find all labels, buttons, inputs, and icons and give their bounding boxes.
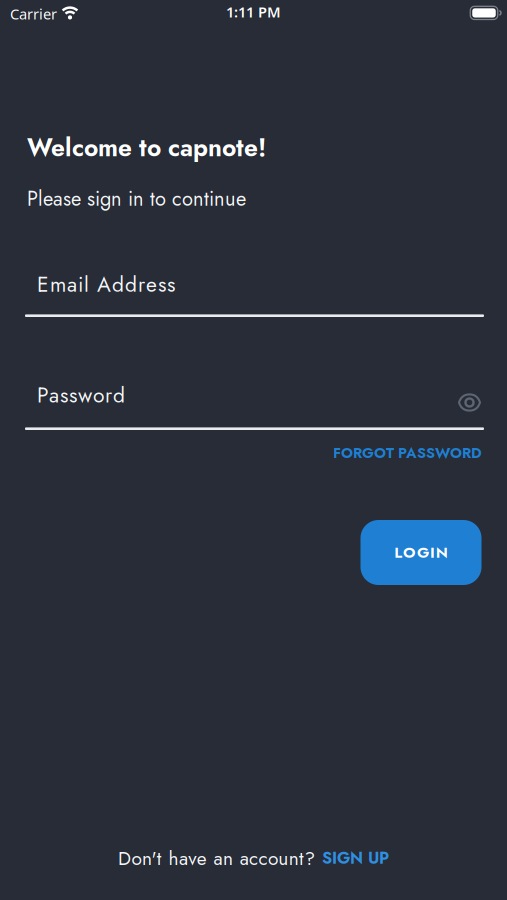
staticText: G <box>417 541 429 564</box>
staticText: L <box>394 541 402 564</box>
staticText: 1:11 PM <box>226 2 281 21</box>
staticText: Email Address <box>37 269 175 300</box>
button[interactable]: Password <box>25 368 484 430</box>
staticText: Password <box>37 380 125 410</box>
staticText: O <box>403 541 416 564</box>
button[interactable]: SIGN UP <box>322 845 389 870</box>
button[interactable]: L <box>360 520 481 585</box>
staticText: Don't have an account? <box>118 845 322 872</box>
staticText: FORGOT PASSWORD <box>333 442 482 463</box>
staticText: I <box>430 541 435 564</box>
button[interactable]: FORGOT PASSWORD <box>333 442 482 463</box>
staticText: Carrier <box>10 4 57 23</box>
staticText: SIGN UP <box>322 846 389 870</box>
button[interactable]: Show password <box>452 388 487 417</box>
button[interactable]: Email Address <box>25 255 484 317</box>
staticText: N <box>436 541 448 564</box>
staticText: Please sign in to continue <box>27 184 246 213</box>
staticText: Welcome to capnote! <box>27 130 266 165</box>
